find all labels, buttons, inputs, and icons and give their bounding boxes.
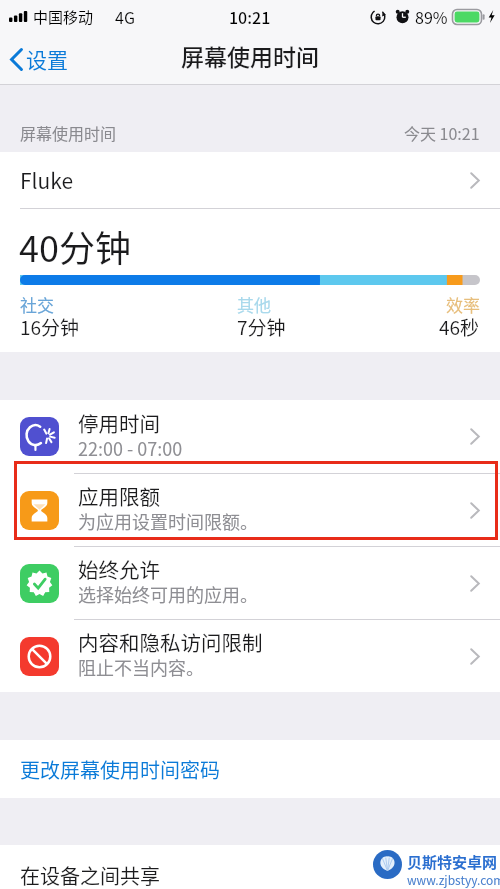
button[interactable]: 更改屏幕使用时间密码 [0,740,500,798]
staticText: 社交 [20,292,54,317]
staticText: 7分钟 [237,313,286,341]
staticText: 今天 10:21 [404,121,480,144]
staticText: 16分钟 [20,313,80,341]
button[interactable]: 在设备之间共享 [0,845,500,889]
button[interactable]: 内容和隐私访问限制 [0,620,500,692]
staticText: 停用时间 [78,408,160,438]
staticText: 始终允许 [78,554,160,584]
staticText: 内容和隐私访问限制 [78,627,263,657]
staticText: 在设备之间共享 [20,861,160,889]
staticText: 其他 [237,292,271,317]
staticText: Fluke [20,165,74,195]
staticText: 10:21 [229,5,271,28]
staticText: 4G [115,5,135,28]
staticText: 为应用设置时间限额。 [78,508,258,534]
button[interactable]: 应用限额 [0,474,500,547]
staticText: 更改屏幕使用时间密码 [20,755,220,784]
staticText: 选择始终可用的应用。 [78,581,258,607]
staticText: 22:00 - 07:00 [78,435,183,461]
staticText: 屏幕使用时间 [20,121,117,144]
staticText: www.zjbstyy.com [407,871,500,888]
staticText: 效率 [446,292,480,317]
staticText: 应用限额 [78,481,160,511]
staticText: 46秒 [439,313,480,341]
button[interactable]: 始终允许 [0,547,500,620]
staticText: 贝斯特安卓网 [407,851,498,873]
staticText: 中国移动 [33,6,94,28]
staticText: 89% [415,5,448,28]
button[interactable]: 设置 [0,44,76,74]
staticText: 屏幕使用时间 [181,39,319,72]
staticText: 阻止不当内容。 [78,654,204,680]
staticText: 40分钟 [19,220,131,272]
staticText: 设置 [26,44,68,74]
button[interactable]: Fluke [0,152,500,208]
button[interactable]: 停用时间 [0,400,500,474]
